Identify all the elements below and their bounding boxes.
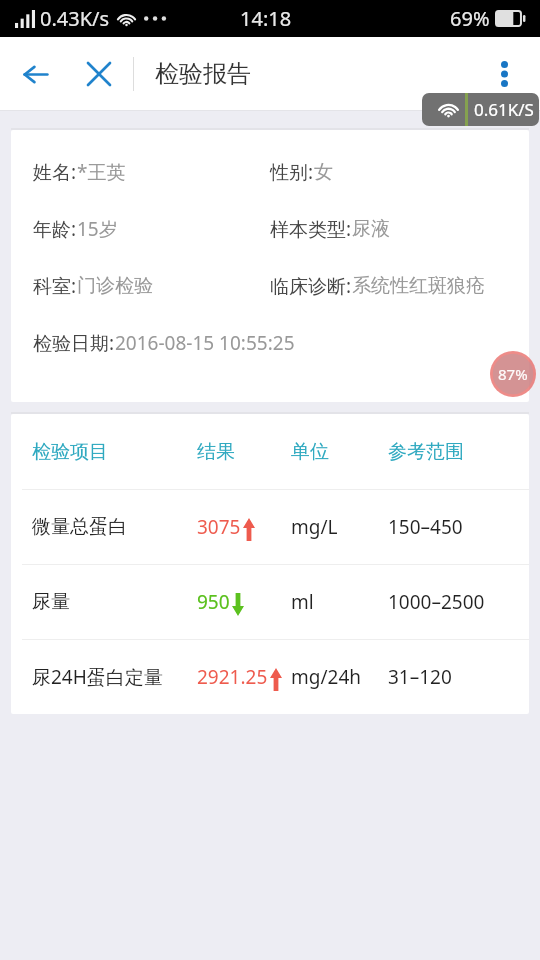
button[interactable]: 微量总蛋白	[11, 490, 529, 564]
button[interactable]: Close	[71, 37, 127, 111]
staticText: 2921.25	[197, 664, 268, 690]
button[interactable]: More options	[468, 37, 540, 111]
staticText: 15岁	[77, 216, 118, 242]
staticText: 0.61K/S	[474, 98, 534, 121]
staticText: mg/24h	[291, 664, 361, 690]
staticText: 参考范围	[388, 440, 464, 464]
staticText: 单位	[291, 440, 329, 464]
button[interactable]: Back	[0, 37, 71, 111]
staticText: 性别:	[270, 159, 314, 185]
staticText: 检验报告	[155, 59, 251, 89]
staticText: 微量总蛋白	[32, 515, 127, 539]
staticText: 样本类型:	[270, 216, 352, 242]
staticText: 科室:	[33, 273, 77, 299]
staticText: 姓名:	[33, 159, 77, 185]
staticText: 年龄:	[33, 216, 77, 242]
staticText: mg/L	[291, 514, 338, 540]
staticText: 女	[314, 160, 333, 184]
staticText: 临床诊断:	[270, 273, 352, 299]
staticText: 门诊检验	[77, 274, 153, 298]
staticText: 尿量	[32, 590, 70, 614]
button[interactable]: 尿量	[11, 565, 529, 639]
staticText: 69%	[450, 5, 490, 32]
staticText: 14:18	[240, 5, 292, 32]
staticText: 尿液	[352, 217, 390, 241]
staticText: 1000–2500	[388, 589, 485, 615]
button[interactable]: 尿24H蛋白定量	[11, 640, 529, 714]
staticText: *王英	[77, 159, 126, 185]
staticText: 87%	[498, 364, 528, 384]
staticText: 检验项目	[32, 440, 108, 464]
staticText: 950	[197, 589, 230, 615]
staticText: 31–120	[388, 664, 452, 690]
staticText: 150–450	[388, 514, 463, 540]
staticText: 检验日期:	[33, 330, 115, 356]
staticText: ml	[291, 589, 314, 615]
staticText: 0.43K/s	[40, 5, 110, 32]
staticText: 尿24H蛋白定量	[32, 664, 163, 690]
staticText: 3075	[197, 514, 241, 540]
staticText: 系统性红斑狼疮	[352, 274, 485, 298]
staticText: 2016-08-15 10:55:25	[115, 330, 295, 356]
staticText: 结果	[197, 440, 235, 464]
